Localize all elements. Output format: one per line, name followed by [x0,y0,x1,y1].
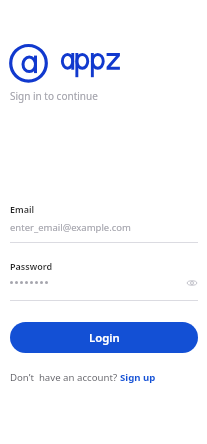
staticText: Password [10,260,53,272]
staticText: Sign up [120,371,156,384]
staticText: Don’t have an account? [10,371,120,384]
button[interactable]: Show password [185,276,199,290]
button[interactable]: enter_email@example.com [10,216,198,243]
staticText: Email [10,203,35,215]
button[interactable] [10,274,198,301]
staticText: enter_email@example.com [10,221,131,234]
button[interactable]: Login [10,322,198,353]
staticText: Login [89,330,120,345]
staticText: Sign in to continue [10,89,98,103]
button[interactable]: Sign up [120,371,156,384]
